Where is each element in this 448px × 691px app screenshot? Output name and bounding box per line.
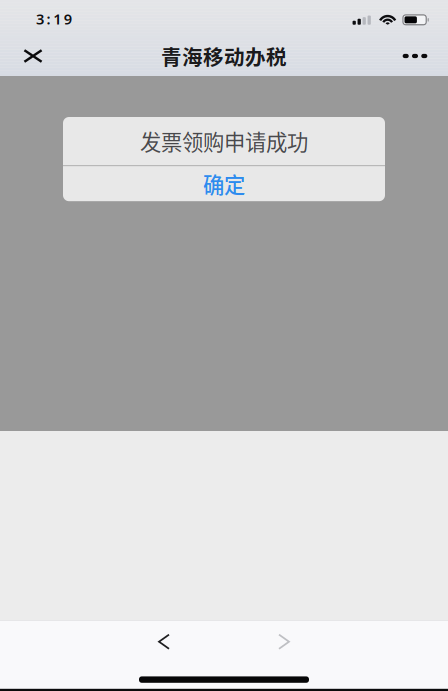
button[interactable]: More options [393, 36, 437, 76]
button[interactable]: Back [138, 622, 190, 662]
staticText: 青海移动办税 [161, 41, 287, 71]
button[interactable]: 确定 [63, 166, 385, 201]
button[interactable]: Forward [258, 622, 310, 662]
staticText: 发票领购申请成功 [140, 126, 308, 156]
staticText: 3:19 [36, 9, 72, 28]
button[interactable]: Close [11, 36, 55, 76]
staticText: 确定 [203, 168, 245, 199]
